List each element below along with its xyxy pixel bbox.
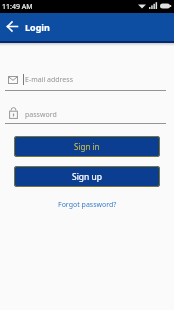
staticText: Forgot password? <box>58 200 117 210</box>
button[interactable]: E-mail address <box>25 71 145 89</box>
button[interactable]: Forgot password? <box>56 198 119 212</box>
staticText: password <box>25 110 57 120</box>
staticText: Sign up <box>72 171 103 183</box>
staticText: Sign in <box>74 141 100 152</box>
staticText: Login <box>25 21 50 33</box>
button[interactable]: password <box>25 106 145 124</box>
staticText: E-mail address <box>25 75 73 85</box>
button[interactable]: Sign in <box>14 136 160 157</box>
button[interactable]: Sign up <box>14 166 160 187</box>
staticText: 11:49 AM <box>2 2 33 12</box>
button[interactable] <box>0 13 24 40</box>
